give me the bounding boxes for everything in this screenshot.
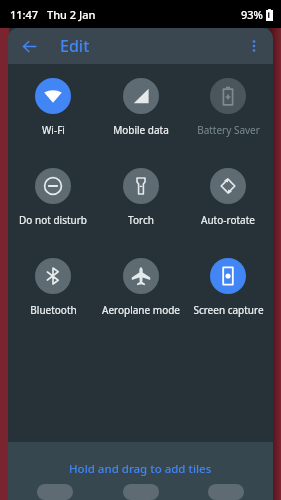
button[interactable]: Battery Saver: [186, 76, 270, 139]
staticText: Edit: [60, 35, 90, 57]
staticText: 11:47: [10, 7, 39, 22]
staticText: Screen capture: [193, 303, 264, 317]
button[interactable]: Mobile data: [99, 76, 183, 139]
button[interactable]: Do not disturb: [11, 166, 95, 229]
staticText: Battery Saver: [197, 123, 260, 137]
button[interactable]: Aeroplane mode: [99, 256, 183, 319]
staticText: 93%: [241, 7, 263, 22]
button[interactable]: Screen capture: [186, 256, 270, 319]
staticText: Torch: [128, 213, 154, 227]
button[interactable]: More options: [239, 31, 269, 61]
button[interactable]: Wi-Fi: [11, 76, 95, 139]
staticText: Hold and drag to add tiles: [69, 461, 212, 477]
staticText: Bluetooth: [30, 303, 77, 317]
button[interactable]: Back: [14, 31, 44, 61]
button[interactable]: Bluetooth: [11, 256, 95, 319]
button[interactable]: Torch: [99, 166, 183, 229]
staticText: Aeroplane mode: [102, 303, 180, 317]
button[interactable]: Auto-rotate: [186, 166, 270, 229]
staticText: Wi-Fi: [42, 123, 65, 137]
staticText: Mobile data: [113, 123, 169, 137]
staticText: Do not disturb: [19, 213, 87, 227]
staticText: Auto-rotate: [201, 213, 255, 227]
staticText: Thu 2 Jan: [47, 7, 96, 22]
